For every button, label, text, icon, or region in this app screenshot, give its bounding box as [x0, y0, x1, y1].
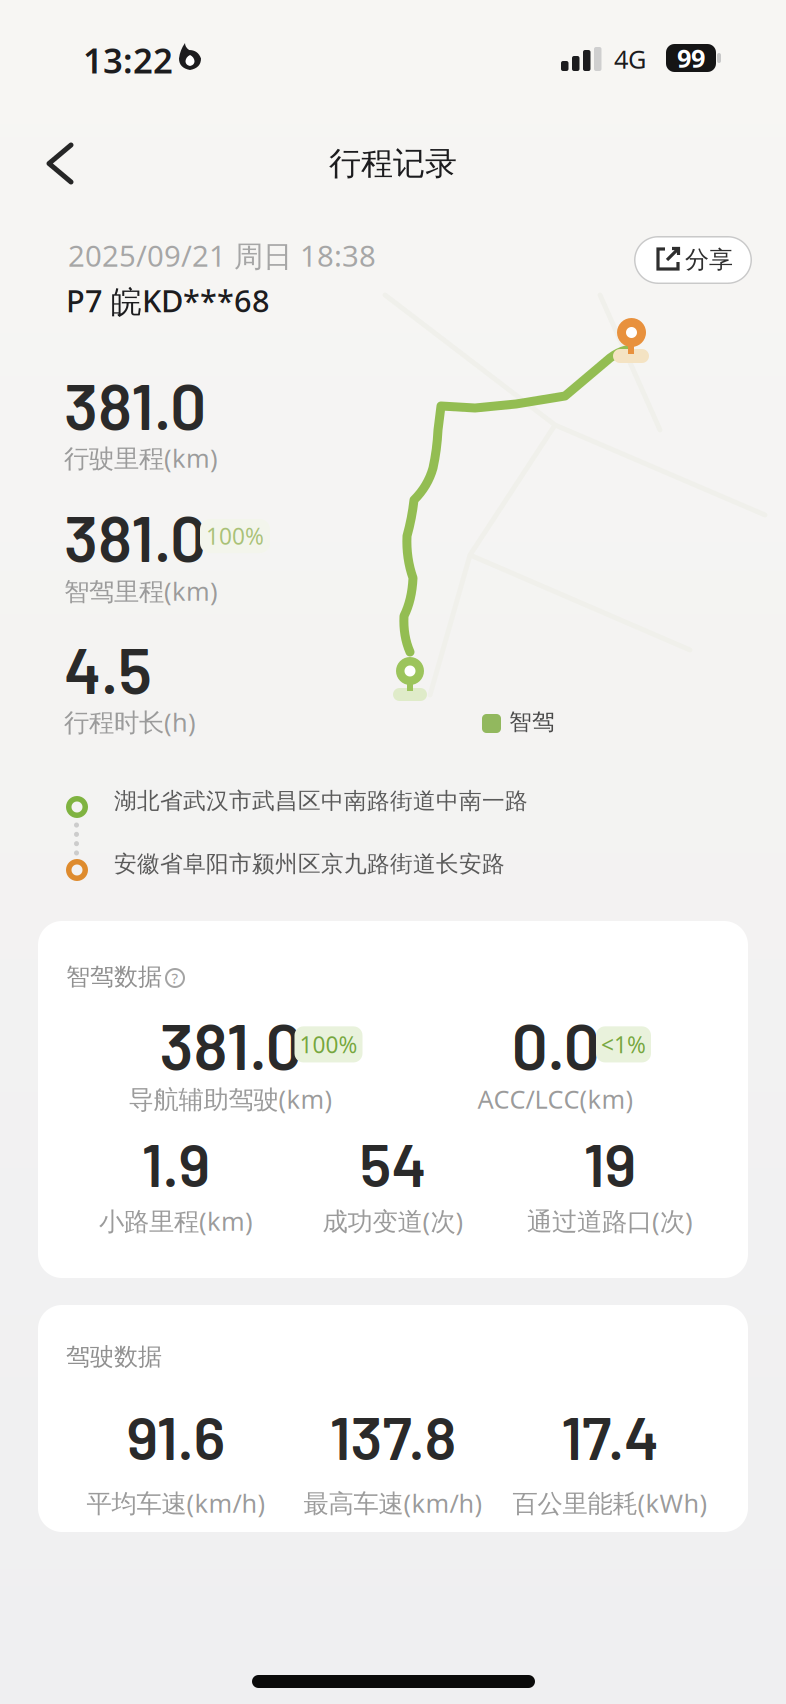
staticText: 1.9: [141, 1127, 210, 1199]
staticText: 分享: [685, 245, 733, 274]
staticText: 91.6: [126, 1400, 225, 1472]
staticText: 381.0: [64, 366, 206, 443]
staticText: 行驶里程(km): [64, 441, 218, 475]
staticText: 381.0: [64, 498, 206, 575]
button[interactable]: 智驾数据说明: [165, 968, 185, 988]
staticText: 137.8: [329, 1400, 456, 1472]
staticText: 4G: [614, 42, 646, 76]
staticText: 100%: [206, 521, 264, 551]
staticText: P7 皖KD***68: [66, 280, 270, 321]
staticText: 2025/09/21 周日 18:38: [68, 236, 376, 275]
staticText: 381.0: [159, 1006, 301, 1083]
staticText: 99: [677, 41, 705, 75]
staticText: 湖北省武汉市武昌区中南路街道中南一路: [114, 787, 528, 815]
staticText: ?: [171, 968, 178, 988]
staticText: 导航辅助驾驶(km): [128, 1082, 332, 1116]
staticText: ACC/LCC(km): [477, 1082, 633, 1116]
staticText: 智驾里程(km): [64, 574, 218, 608]
staticText: 19: [583, 1127, 636, 1199]
staticText: 100%: [299, 1029, 357, 1059]
staticText: 0.0: [511, 1006, 599, 1083]
staticText: 54: [359, 1127, 426, 1199]
staticText: 智驾: [509, 708, 555, 736]
staticText: 4.5: [64, 630, 152, 707]
button[interactable]: 分享: [634, 236, 752, 284]
staticText: 平均车速(km/h): [86, 1486, 265, 1520]
staticText: 小路里程(km): [99, 1204, 253, 1238]
staticText: 17.4: [561, 1400, 659, 1472]
staticText: 行程记录: [329, 144, 457, 183]
staticText: 通过道路口(次): [527, 1204, 693, 1238]
staticText: 智驾数据: [66, 962, 162, 991]
staticText: <1%: [601, 1029, 646, 1059]
staticText: 百公里能耗(kWh): [512, 1486, 707, 1520]
staticText: 行程时长(h): [64, 705, 196, 739]
button[interactable]: Back: [42, 142, 78, 185]
staticText: 安徽省阜阳市颍州区京九路街道长安路: [114, 850, 505, 878]
staticText: 13:22: [83, 37, 173, 83]
staticText: 成功变道(次): [322, 1204, 463, 1238]
staticText: 最高车速(km/h): [303, 1486, 482, 1520]
staticText: 驾驶数据: [66, 1342, 162, 1371]
